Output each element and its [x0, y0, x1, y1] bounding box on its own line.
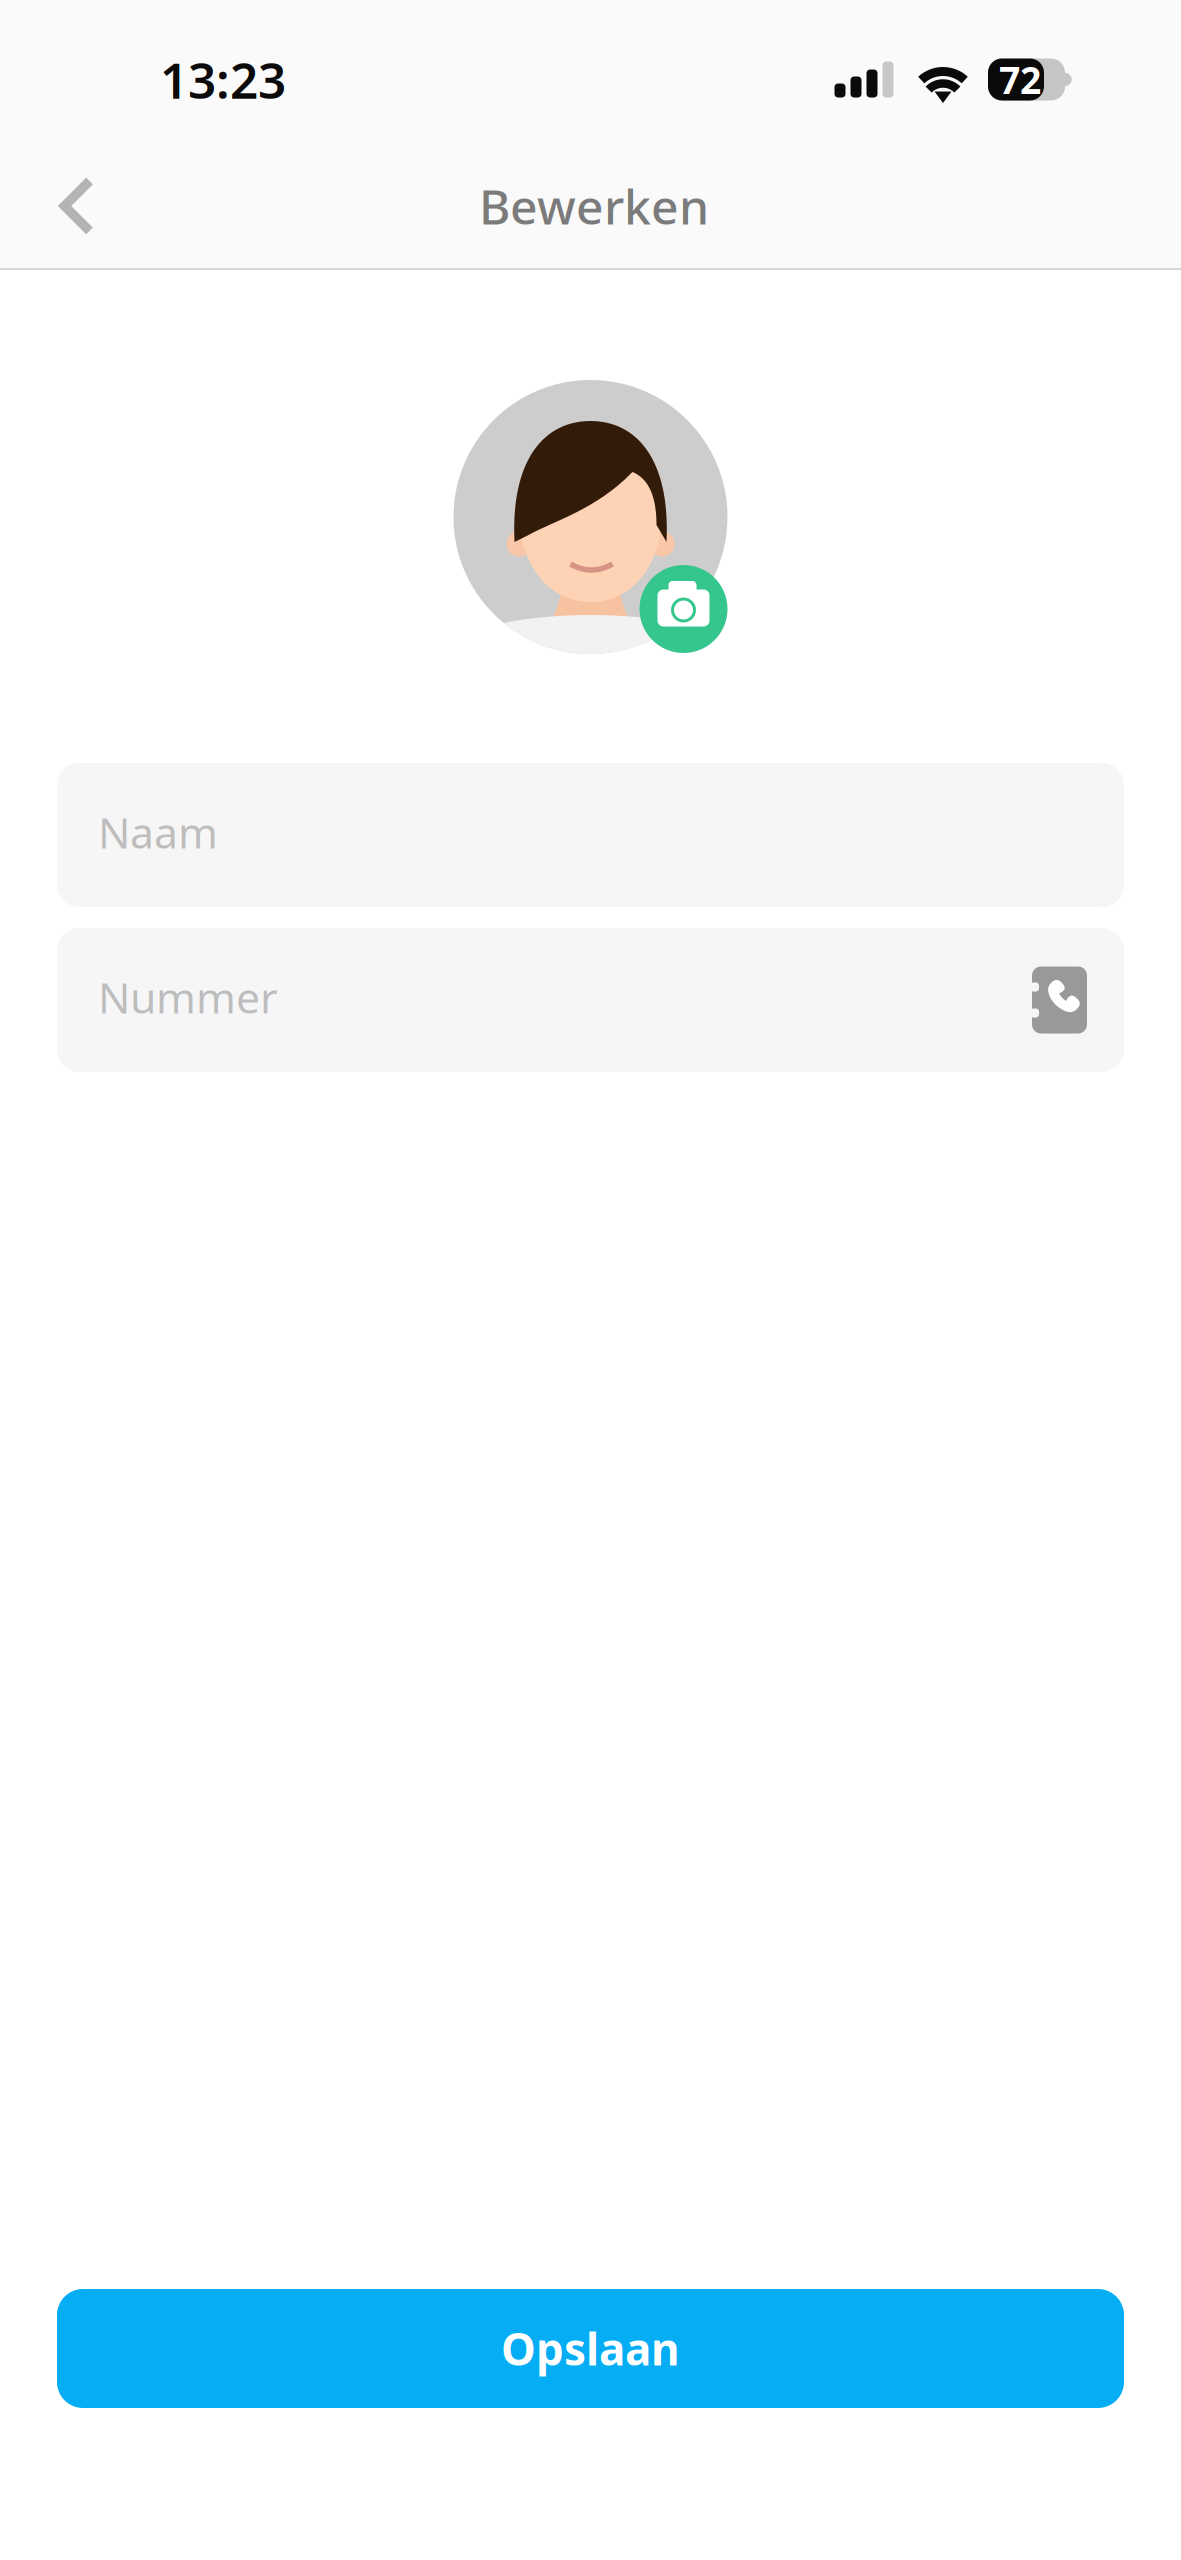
- staticText: Opslaan: [501, 2319, 680, 2378]
- staticText: 72: [999, 55, 1041, 104]
- button[interactable]: Change photo: [453, 380, 727, 654]
- staticText: Naam: [98, 804, 218, 860]
- button[interactable]: Choose from contacts: [1032, 966, 1087, 1033]
- staticText: 13:23: [160, 47, 286, 112]
- staticText: Bewerken: [479, 174, 709, 238]
- button[interactable]: Opslaan: [57, 2289, 1124, 2408]
- staticText: Nummer: [98, 969, 278, 1025]
- button[interactable]: Back: [25, 154, 129, 258]
